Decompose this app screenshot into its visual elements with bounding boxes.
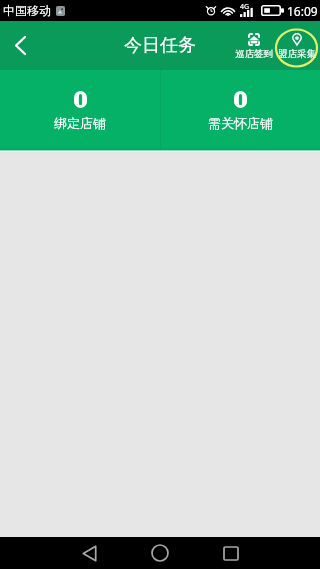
staticText: 今日任务 (124, 34, 196, 57)
button[interactable]: 巡店签到 (230, 21, 278, 70)
button[interactable]: 盟店采集 (272, 21, 320, 70)
staticText: 16:09 (287, 3, 318, 19)
staticText: 中国移动 (3, 3, 51, 18)
button[interactable]: Back (65, 537, 113, 569)
button[interactable]: Home (136, 537, 184, 569)
staticText: 绑定店铺 (54, 115, 106, 131)
staticText: 需关怀店铺 (208, 115, 273, 131)
staticText: 盟店采集 (278, 48, 316, 60)
button[interactable]: 返回 (0, 21, 40, 70)
button[interactable]: Recents (207, 537, 255, 569)
staticText: 4G (240, 2, 250, 12)
button[interactable]: 需关怀店铺 (160, 70, 320, 149)
button[interactable]: 绑定店铺 (0, 70, 160, 149)
staticText: 巡店签到 (235, 48, 273, 60)
